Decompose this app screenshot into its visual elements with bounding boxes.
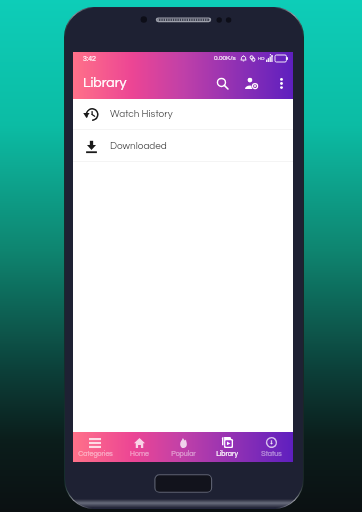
button[interactable]: Search — [210, 71, 234, 95]
button[interactable]: Watch History — [73, 99, 293, 129]
staticText: Downloaded — [110, 141, 167, 151]
button[interactable]: More options — [270, 72, 292, 94]
button[interactable]: Categories — [73, 432, 117, 462]
button[interactable]: Add account — [239, 71, 263, 95]
button[interactable]: Status — [249, 432, 293, 462]
button[interactable]: Home — [117, 432, 161, 462]
staticText: Watch History — [110, 109, 173, 119]
staticText: 0.00K/s — [214, 55, 236, 62]
staticText: Popular — [171, 450, 196, 457]
staticText: Categories — [78, 450, 113, 457]
button[interactable]: Library — [205, 432, 249, 462]
button[interactable]: Downloaded — [73, 130, 293, 161]
staticText: Home — [130, 450, 149, 457]
staticText: HD — [258, 56, 265, 61]
staticText: Library — [83, 76, 127, 90]
staticText: Status — [261, 450, 282, 457]
button[interactable]: Popular — [161, 432, 205, 462]
staticText: 3:42 — [83, 55, 96, 62]
staticText: Library — [216, 450, 238, 457]
